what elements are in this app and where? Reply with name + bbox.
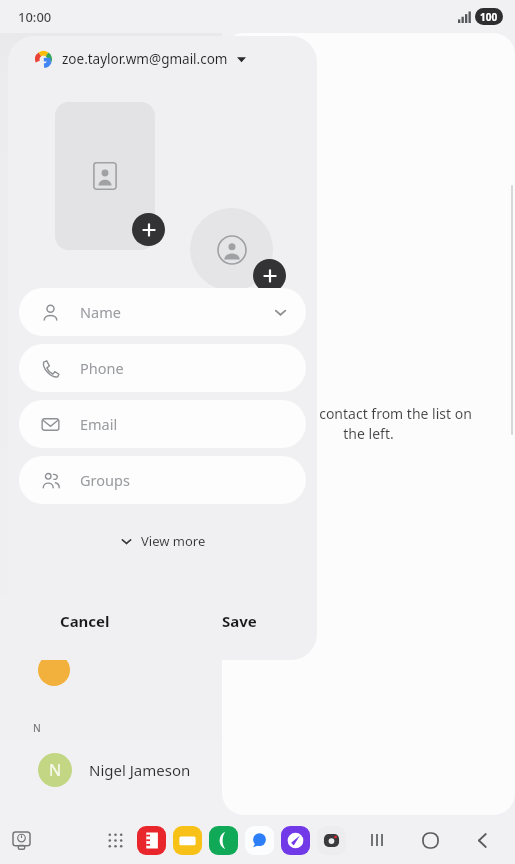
staticText: zoe.taylor.wm@gmail.com xyxy=(62,50,228,68)
button[interactable]: App xyxy=(137,826,166,855)
button[interactable]: Home xyxy=(413,823,447,857)
button[interactable]: App xyxy=(281,826,310,855)
button[interactable]: Recents xyxy=(361,823,395,857)
button[interactable]: App xyxy=(209,826,238,855)
button[interactable]: Name xyxy=(19,288,306,336)
button[interactable]: Groups xyxy=(19,456,306,504)
button[interactable]: Save xyxy=(162,584,317,658)
staticText: Cancel xyxy=(60,611,110,631)
staticText: Phone xyxy=(80,358,124,378)
staticText: Groups xyxy=(80,470,130,490)
staticText: View more xyxy=(141,532,206,550)
button[interactable]: Phone xyxy=(19,344,306,392)
button[interactable]: Add photo xyxy=(55,102,155,250)
button[interactable]: App xyxy=(173,826,202,855)
button[interactable]: App xyxy=(245,826,274,855)
staticText: 10:00 xyxy=(18,8,52,26)
staticText: Nigel Jameson xyxy=(89,760,191,780)
button[interactable]: Add avatar xyxy=(253,259,286,292)
button[interactable]: View more xyxy=(8,524,317,558)
staticText: 100 xyxy=(480,10,498,24)
button[interactable]: App xyxy=(317,826,346,855)
button[interactable]: Apps xyxy=(100,825,130,855)
button[interactable]: Cancel xyxy=(8,584,162,658)
staticText: Name xyxy=(80,302,121,322)
button[interactable]: Email xyxy=(19,400,306,448)
button[interactable]: Add photo xyxy=(132,213,165,246)
button[interactable]: zoe.taylor.wm@gmail.com xyxy=(8,36,317,82)
button[interactable]: Recent screen xyxy=(6,825,36,855)
staticText: Save xyxy=(222,611,257,631)
staticText: Email xyxy=(80,414,118,434)
button[interactable]: Back xyxy=(465,823,499,857)
button[interactable]: N xyxy=(0,746,222,794)
button[interactable]: Add avatar xyxy=(190,208,273,291)
staticText: Select a contact from the list on the le… xyxy=(265,404,472,444)
staticText: N xyxy=(33,721,41,735)
staticText: N xyxy=(49,759,62,781)
